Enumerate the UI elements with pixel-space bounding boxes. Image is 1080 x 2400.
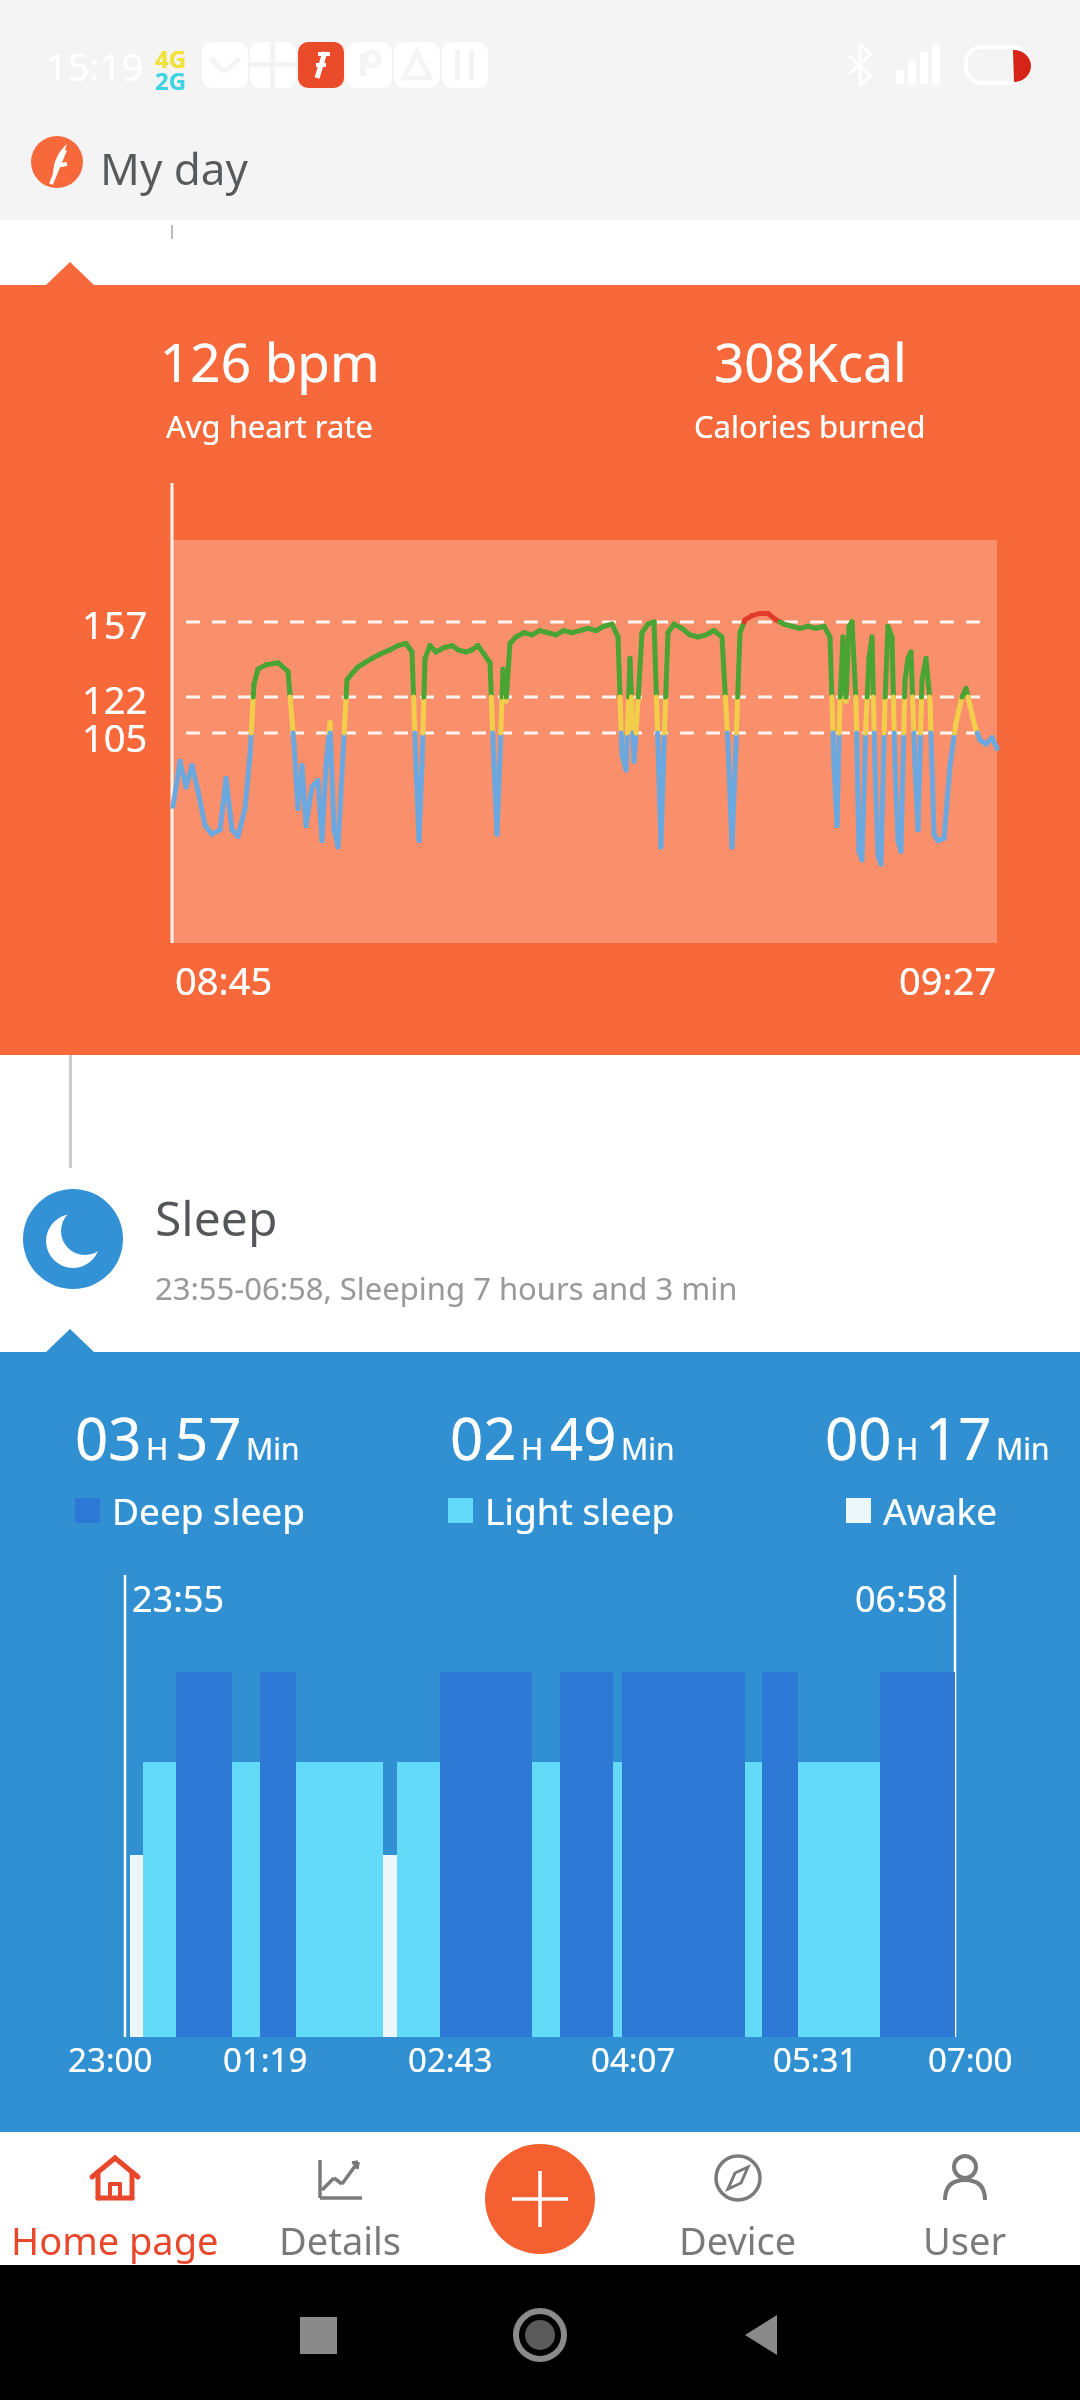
staticText: 03	[75, 1398, 142, 1477]
staticText: Calories burned	[694, 405, 926, 447]
staticText: 06:58	[855, 1574, 948, 1623]
button[interactable]: 03	[0, 1352, 1080, 2132]
staticText: 07:00	[928, 2037, 1013, 2082]
staticText: 23:55-06:58, Sleeping 7 hours and 3 min	[155, 1267, 738, 1309]
button[interactable]	[31, 136, 83, 188]
button[interactable]	[23, 1189, 123, 1289]
staticText: 57	[175, 1398, 242, 1477]
button[interactable]: Home page	[7, 2132, 223, 2265]
staticText: 105	[82, 711, 148, 763]
staticText: 122	[82, 673, 148, 725]
staticText: 02:43	[408, 2037, 493, 2082]
staticText: Awake	[883, 1485, 998, 1535]
staticText: 04:07	[591, 2037, 676, 2082]
staticText: 4G	[155, 42, 187, 75]
staticText: Light sleep	[485, 1485, 675, 1535]
staticText: Sleep	[155, 1185, 278, 1250]
staticText: Min	[996, 1428, 1050, 1469]
staticText: 157	[82, 598, 148, 650]
staticText: H	[896, 1428, 919, 1469]
staticText: Details	[279, 2214, 402, 2265]
staticText: H	[521, 1428, 544, 1469]
staticText: 49	[550, 1398, 617, 1477]
staticText: 23:00	[68, 2037, 153, 2082]
staticText: 23:55	[132, 1574, 225, 1623]
staticText: 08:45	[175, 954, 273, 1006]
button[interactable]	[485, 2144, 595, 2254]
staticText: 17	[925, 1398, 992, 1477]
staticText: Home page	[11, 2214, 219, 2265]
staticText: 09:27	[899, 954, 997, 1006]
staticText: 05:31	[773, 2037, 858, 2082]
staticText: 01:19	[223, 2037, 308, 2082]
staticText: 2G	[155, 64, 187, 97]
button[interactable]: User	[857, 2132, 1073, 2265]
button[interactable]: Device	[630, 2132, 846, 2265]
staticText: Min	[246, 1428, 300, 1469]
staticText: User	[923, 2214, 1007, 2265]
staticText: 308Kcal	[714, 325, 907, 397]
button[interactable]: 126 bpm	[0, 285, 1080, 1055]
staticText: H	[146, 1428, 169, 1469]
staticText: Device	[679, 2214, 797, 2265]
staticText: Avg heart rate	[166, 405, 374, 447]
staticText: Min	[621, 1428, 675, 1469]
staticText: My day	[100, 138, 248, 198]
staticText: 02	[450, 1398, 517, 1477]
staticText: 15:19	[46, 40, 144, 92]
button[interactable]: Details	[232, 2132, 448, 2265]
staticText: 00	[825, 1398, 892, 1477]
staticText: Deep sleep	[112, 1485, 305, 1535]
staticText: 126 bpm	[160, 325, 380, 397]
